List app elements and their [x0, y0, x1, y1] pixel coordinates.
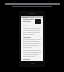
button[interactable] — [21, 16, 43, 18]
button[interactable]: Home — [31, 63, 34, 64]
button[interactable]: Article image — [35, 19, 41, 24]
button[interactable] — [0, 3, 64, 7]
button[interactable]: Phone device mockup — [19, 11, 45, 67]
